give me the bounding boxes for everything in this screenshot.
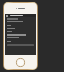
button[interactable]: Home (16, 58, 25, 67)
button[interactable] (5, 14, 36, 17)
